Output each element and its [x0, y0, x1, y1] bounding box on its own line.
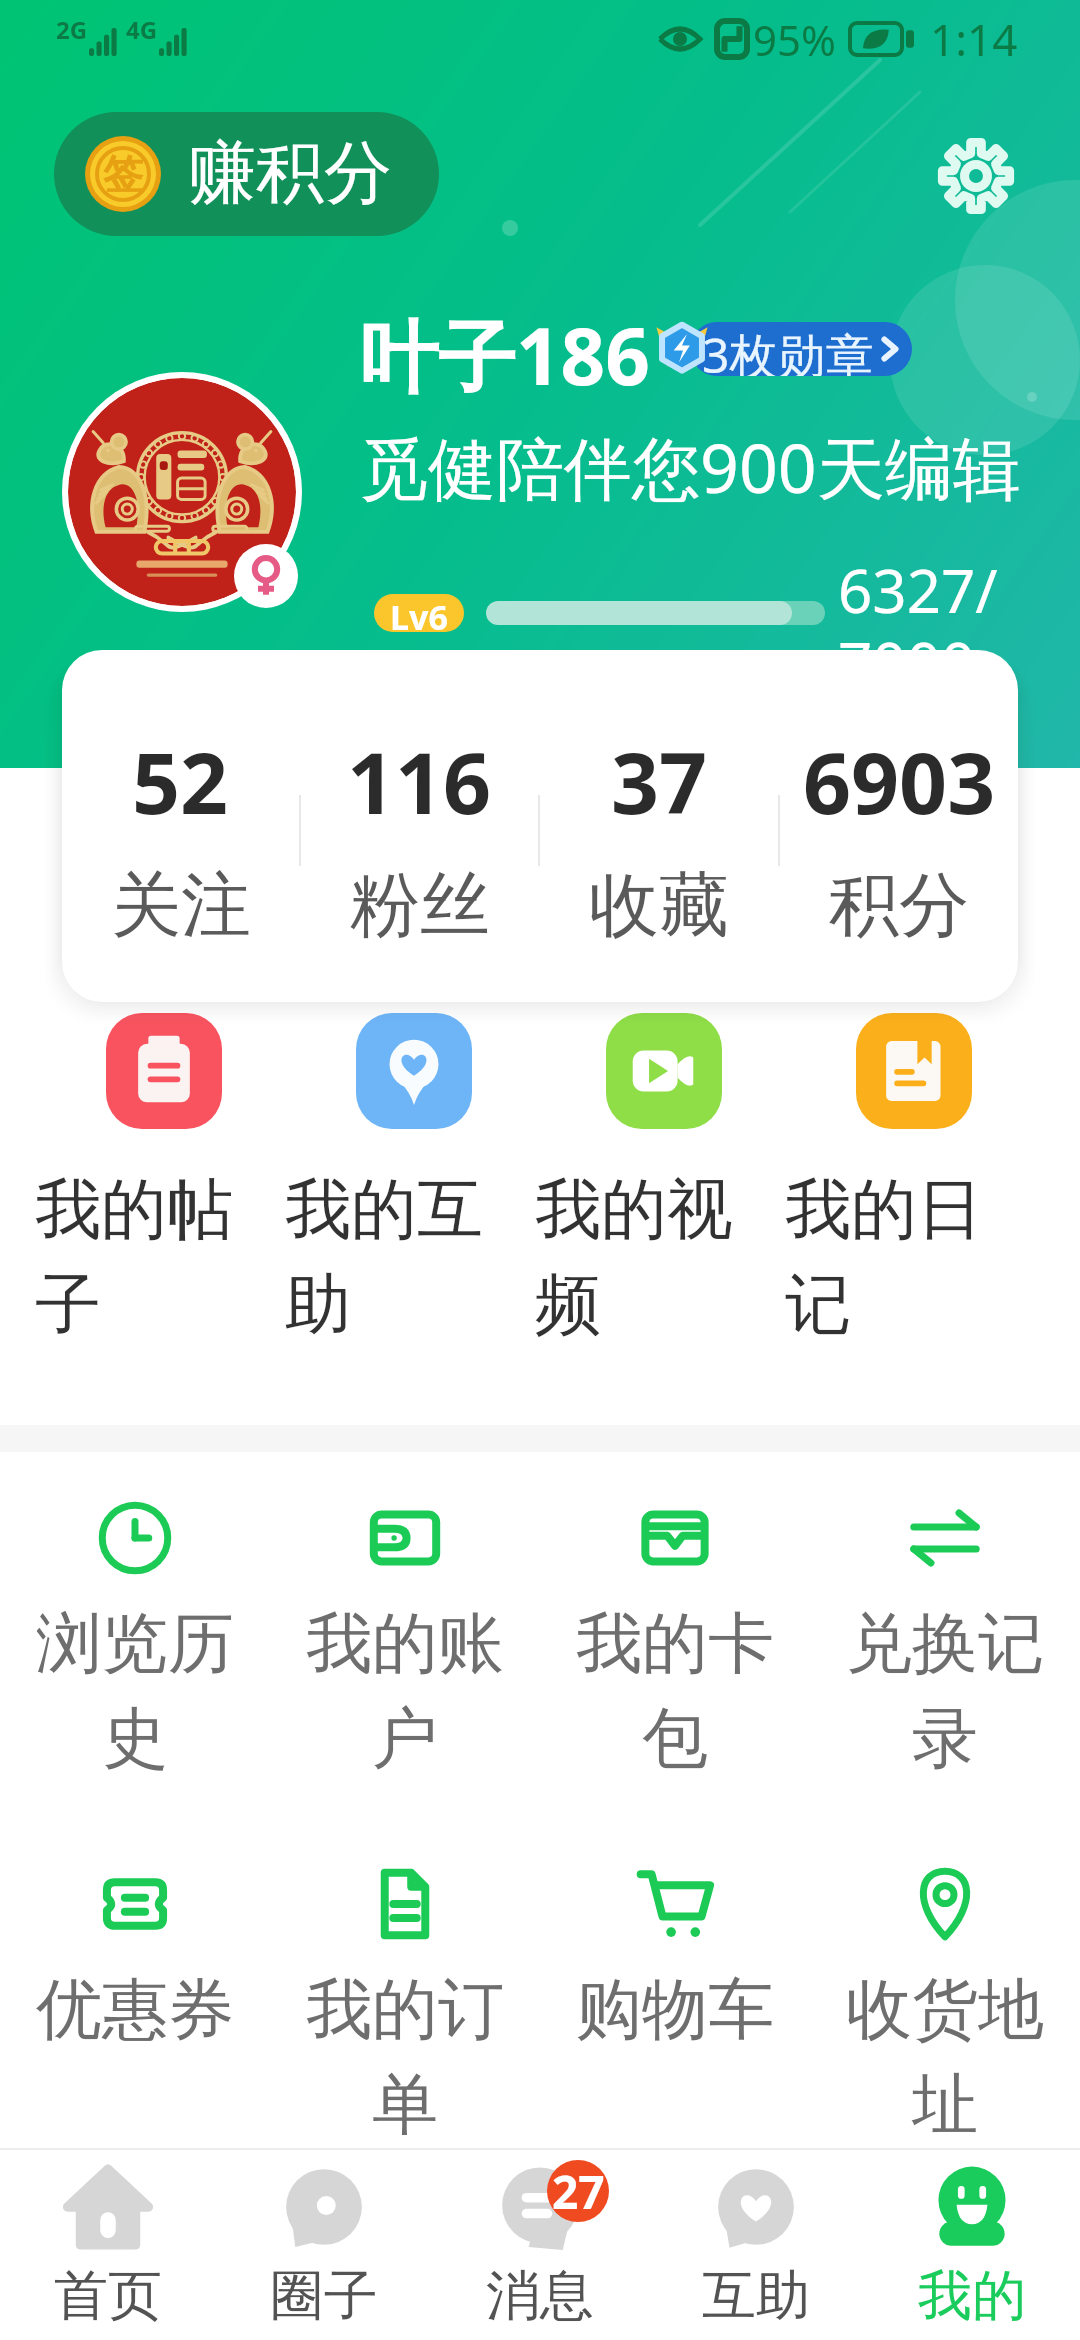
staticText: 116	[347, 724, 492, 838]
button[interactable]: 我的互 助	[285, 1013, 535, 1347]
staticText: 我的账 户	[306, 1602, 504, 1781]
staticText: 2G	[56, 13, 88, 46]
staticText: 1:14	[930, 9, 1018, 69]
staticText: 4G	[126, 13, 158, 46]
button[interactable]: 优惠券	[0, 1865, 270, 2051]
staticText: 95%	[753, 11, 836, 68]
staticText: 37	[611, 724, 708, 838]
staticText: 觅健陪伴您900天编辑	[360, 420, 1021, 513]
staticText: 首页	[54, 2262, 162, 2330]
staticText: 收货地 址	[846, 1968, 1044, 2147]
button[interactable]: 116	[301, 724, 538, 1002]
staticText: 消息	[486, 2262, 594, 2330]
staticText: 浏览历 史	[36, 1602, 234, 1781]
staticText: 关注	[111, 862, 251, 950]
button[interactable]: 我的日 记	[785, 1013, 1035, 1347]
button[interactable]: 6903	[780, 724, 1018, 1002]
staticText: 3枚勋章	[702, 322, 874, 376]
staticText: 互助	[702, 2262, 810, 2330]
staticText: 购物车	[576, 1968, 774, 2051]
staticText: 27	[552, 2160, 605, 2222]
button[interactable]: Lv6	[374, 594, 464, 632]
staticText: 积分	[829, 862, 969, 950]
button[interactable]: 3枚勋章	[690, 322, 912, 376]
staticText: 叶子186	[360, 302, 650, 409]
button[interactable]: 我的账 户	[270, 1499, 540, 1781]
staticText: Lv6	[390, 594, 448, 632]
button[interactable]: 我的帖 子	[35, 1013, 285, 1347]
button[interactable]: 我的	[864, 2150, 1080, 2340]
button[interactable]: Settings	[928, 128, 1024, 224]
button[interactable]: 27	[432, 2150, 648, 2340]
button[interactable]: 圈子	[216, 2150, 432, 2340]
staticText: 我的	[918, 2262, 1026, 2330]
staticText: 收藏	[589, 862, 729, 950]
staticText: 优惠券	[36, 1968, 234, 2051]
button[interactable]: Avatar	[68, 378, 296, 606]
staticText: 我的订 单	[306, 1968, 504, 2147]
staticText: 我的帖 子	[35, 1168, 233, 1347]
staticText: 粉丝	[350, 862, 490, 950]
button[interactable]: 购物车	[540, 1865, 810, 2051]
staticText: 赚积分	[188, 131, 392, 217]
button[interactable]: 我的卡 包	[540, 1499, 810, 1781]
button[interactable]: 52	[62, 724, 299, 1002]
button[interactable]: 首页	[0, 2150, 216, 2340]
button[interactable]: 收货地 址	[810, 1865, 1080, 2147]
staticText: 我的互 助	[285, 1168, 483, 1347]
staticText: 我的卡 包	[576, 1602, 774, 1781]
button[interactable]: 我的视 频	[535, 1013, 785, 1347]
staticText: 52	[132, 724, 229, 838]
staticText: 签	[103, 149, 143, 199]
button[interactable]: 兑换记 录	[810, 1499, 1080, 1781]
button[interactable]: 我的订 单	[270, 1865, 540, 2147]
staticText: 6903	[803, 724, 996, 838]
button[interactable]: 互助	[648, 2150, 864, 2340]
button[interactable]: 浏览历 史	[0, 1499, 270, 1781]
staticText: 圈子	[270, 2262, 378, 2330]
staticText: 6327/ 7000	[838, 549, 998, 703]
button[interactable]: 37	[540, 724, 778, 1002]
staticText: 我的日 记	[785, 1168, 983, 1347]
staticText: 我的视 频	[535, 1168, 733, 1347]
button[interactable]: 签	[54, 112, 439, 236]
staticText: 兑换记 录	[846, 1602, 1044, 1781]
